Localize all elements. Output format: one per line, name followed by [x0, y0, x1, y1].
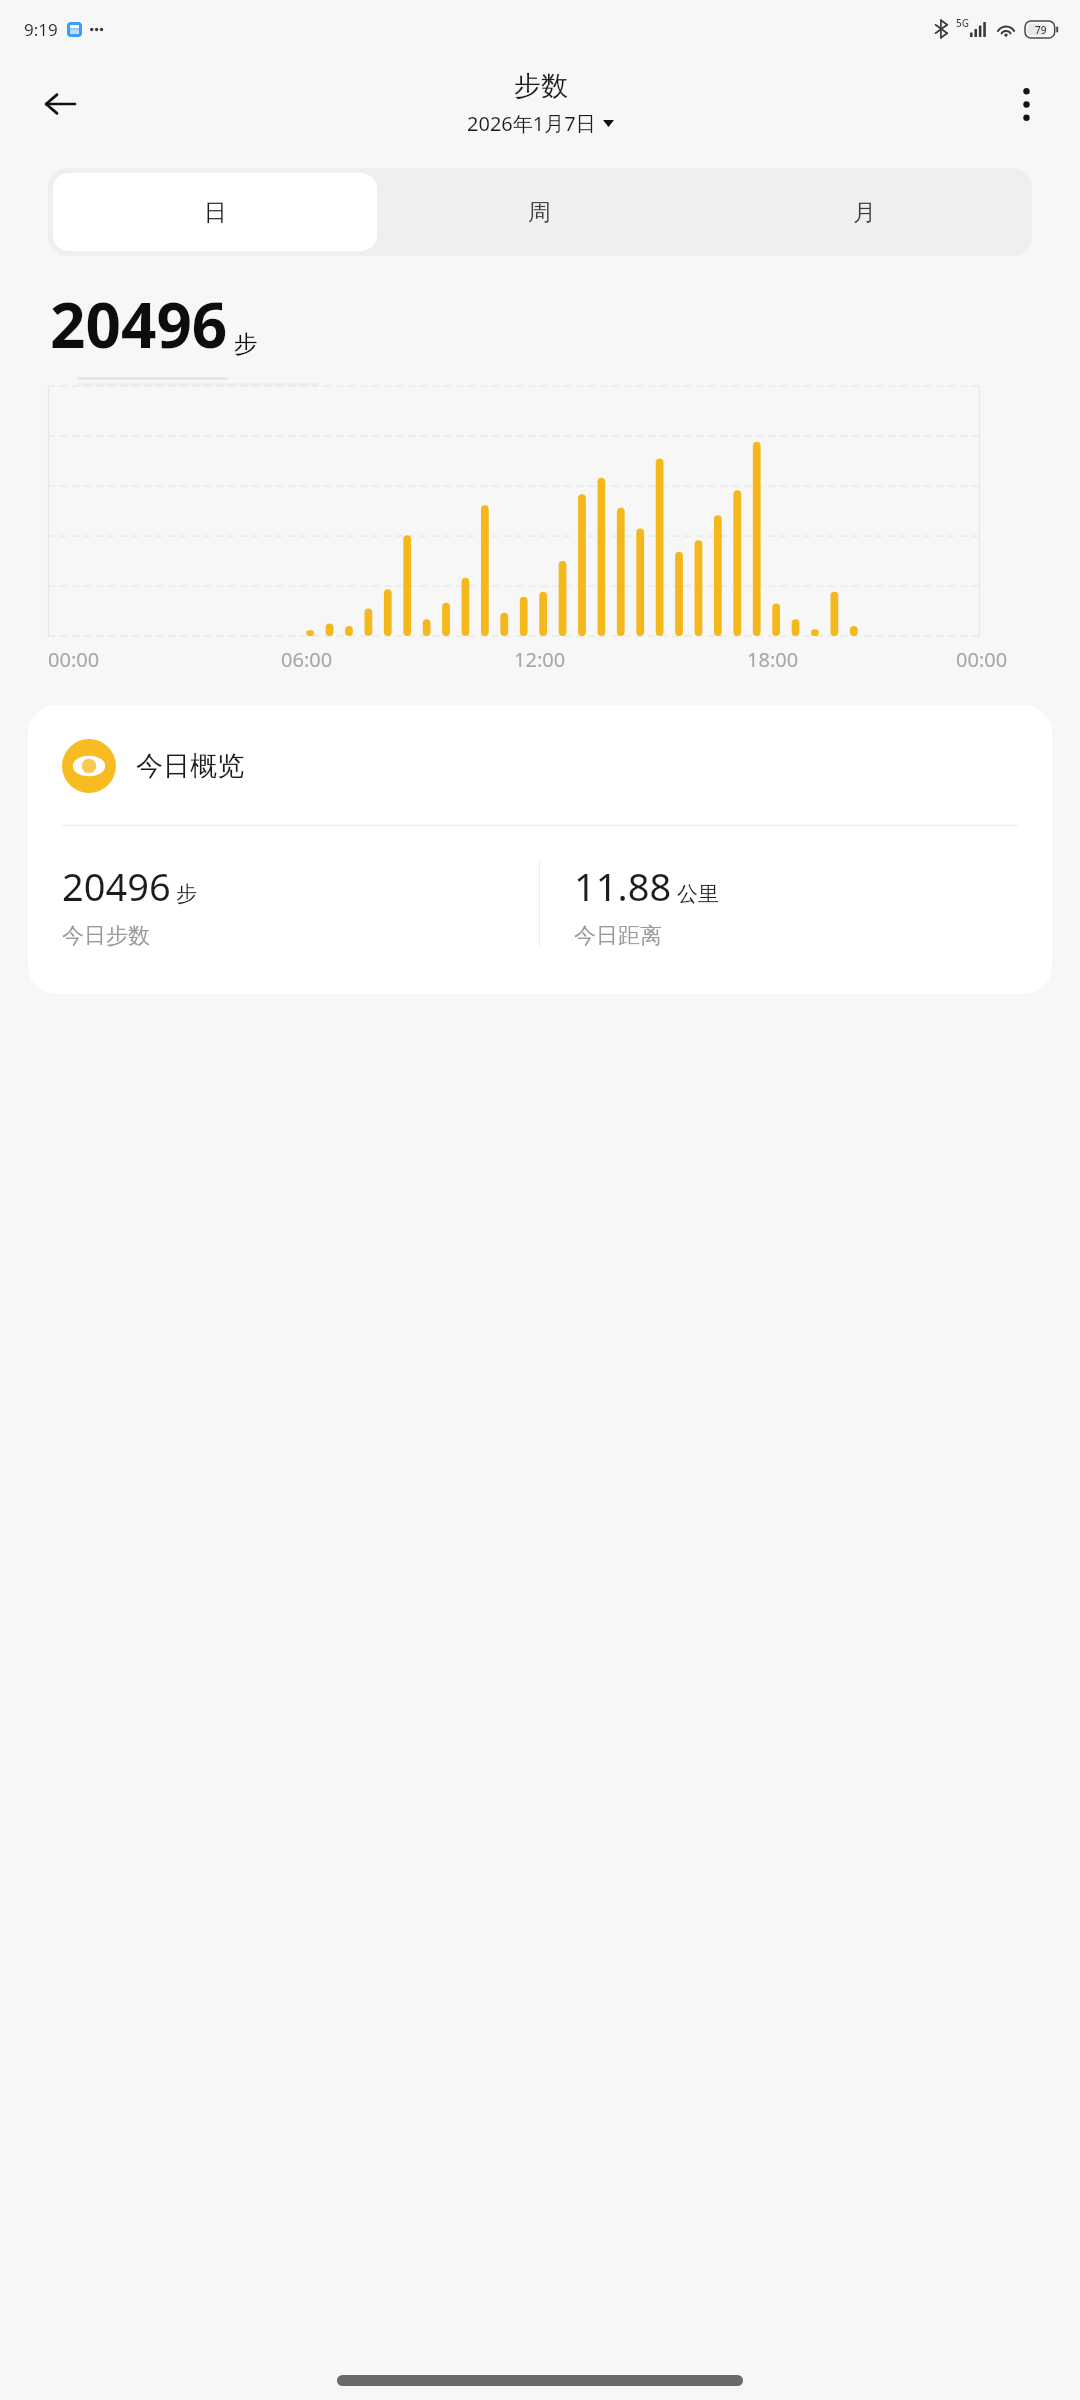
staticText: 20496 — [50, 282, 228, 366]
staticText: 步 — [176, 881, 197, 907]
staticText: 9:19 — [24, 18, 58, 41]
staticText: 20496 — [62, 860, 171, 912]
staticText: 06:00 — [281, 646, 333, 673]
button[interactable]: 日 — [53, 173, 377, 251]
staticText: 11.88 — [574, 860, 672, 912]
staticText: 步 — [234, 329, 258, 359]
staticText: 00:00 — [956, 646, 1008, 673]
staticText: 79 — [1035, 23, 1047, 37]
staticText: 5G — [956, 16, 969, 30]
staticText: 月 — [853, 198, 876, 227]
staticText: 12:00 — [514, 646, 566, 673]
button[interactable]: 今日概览 — [28, 705, 1052, 994]
staticText: 2026年1月7日 — [467, 110, 596, 137]
button[interactable]: More options — [998, 76, 1054, 132]
button[interactable]: Back — [32, 76, 88, 132]
staticText: 今日概览 — [136, 749, 244, 783]
staticText: 日 — [204, 198, 227, 227]
staticText: 今日步数 — [62, 922, 150, 950]
staticText: 今日距离 — [574, 922, 662, 950]
button[interactable]: 周 — [377, 173, 702, 251]
button[interactable]: 月 — [702, 173, 1027, 251]
staticText: 步数 — [514, 69, 568, 103]
button[interactable]: 2026年1月7日 — [463, 108, 618, 139]
staticText: 公里 — [677, 881, 719, 907]
staticText: 00:00 — [48, 646, 100, 673]
staticText: 18:00 — [747, 646, 799, 673]
staticText: 周 — [528, 198, 551, 227]
